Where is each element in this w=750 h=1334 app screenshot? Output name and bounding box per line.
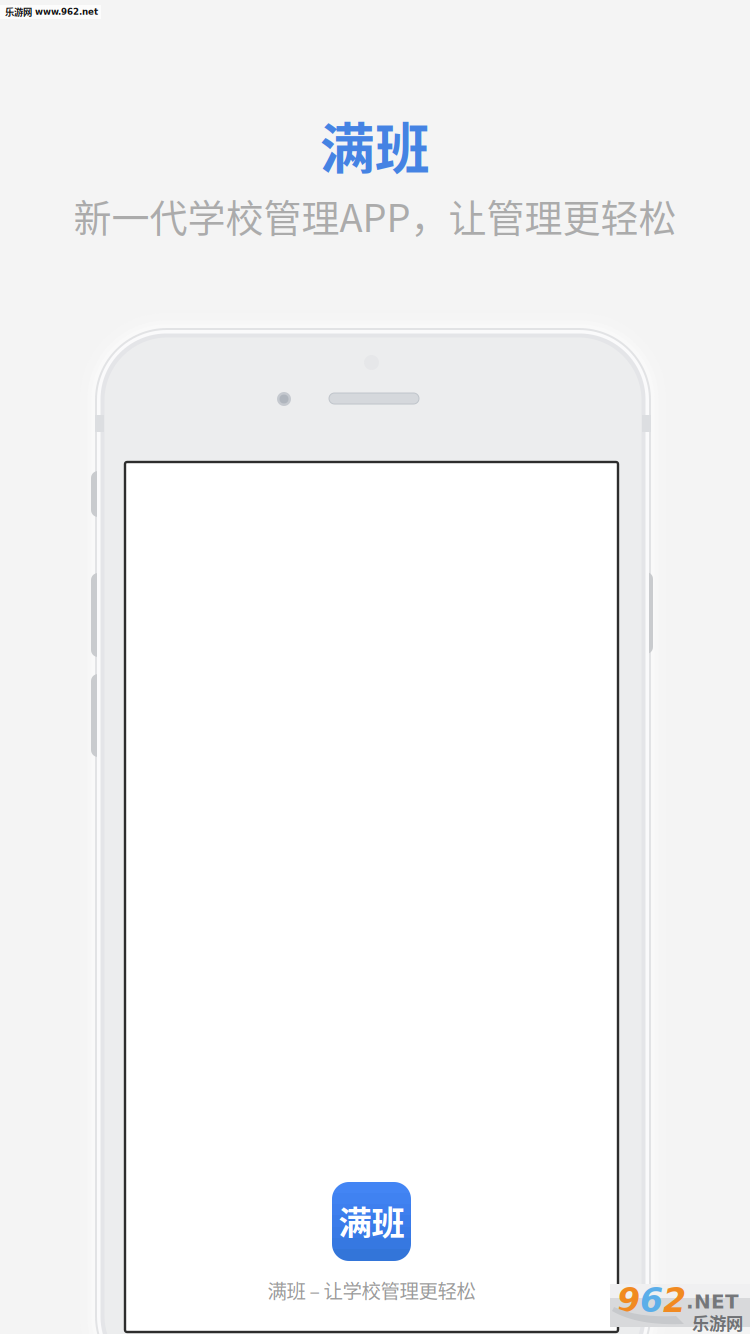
staticText: 6 <box>640 1281 663 1320</box>
staticText: 9 <box>617 1281 640 1320</box>
staticText: 满班 <box>320 105 430 184</box>
staticText: 乐游网 <box>692 1310 743 1334</box>
staticText: 乐游网 <box>5 5 32 18</box>
staticText: www.962.net <box>35 7 98 17</box>
staticText: 满班 <box>338 1196 404 1245</box>
staticText: 满班 – 让学校管理更轻松 <box>267 1276 475 1304</box>
staticText: .NET <box>686 1290 739 1313</box>
staticText: 2 <box>663 1281 686 1320</box>
staticText: 新一代学校管理APP，让管理更轻松 <box>73 188 676 243</box>
